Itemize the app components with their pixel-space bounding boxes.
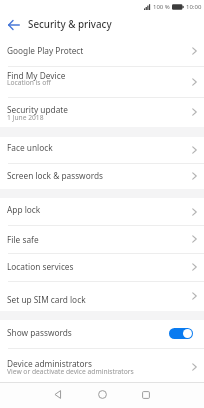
- staticText: Location services: [7, 261, 74, 272]
- staticText: Security & privacy: [28, 18, 112, 31]
- button[interactable]: Face unlock: [0, 137, 204, 163]
- button[interactable]: Device administrators: [0, 349, 204, 384]
- staticText: Show passwords: [7, 327, 72, 338]
- staticText: 100 %: [153, 3, 170, 11]
- button[interactable]: [34, 383, 82, 408]
- staticText: Location is off: [7, 78, 51, 87]
- staticText: Face unlock: [7, 142, 53, 153]
- staticText: Set up SIM card lock: [7, 294, 86, 305]
- staticText: 10:00: [186, 3, 202, 11]
- staticText: Find My Device: [7, 70, 66, 81]
- staticText: Device administrators: [7, 358, 92, 369]
- button[interactable]: Find My Device: [0, 67, 204, 97]
- button[interactable]: Security update: [0, 97, 204, 127]
- staticText: Google Play Protect: [7, 45, 84, 56]
- button[interactable]: Location services: [0, 253, 204, 281]
- staticText: App lock: [7, 204, 41, 215]
- staticText: Security update: [7, 104, 68, 115]
- staticText: Screen lock & passwords: [7, 170, 103, 181]
- button[interactable]: [82, 383, 122, 408]
- staticText: 1 June 2018: [7, 113, 44, 122]
- button[interactable]: Show passwords: [0, 320, 204, 348]
- button[interactable]: [122, 383, 170, 408]
- staticText: File safe: [7, 234, 39, 245]
- button[interactable]: Google Play Protect: [0, 36, 204, 66]
- button[interactable]: Screen lock & passwords: [0, 163, 204, 189]
- button[interactable]: [8, 20, 20, 30]
- button[interactable]: File safe: [0, 225, 204, 253]
- button[interactable]: Set up SIM card lock: [0, 281, 204, 311]
- staticText: View or deactivate device administrators: [7, 367, 134, 376]
- button[interactable]: App lock: [0, 198, 204, 225]
